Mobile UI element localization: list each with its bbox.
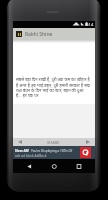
button[interactable]: Previous	[13, 138, 27, 146]
staticText: सबसे बड़ा दिन राखी है, दूरी क्या कम का त…	[16, 77, 91, 98]
staticText: Rakhi Shine	[25, 31, 53, 38]
staticText: SHARE	[47, 140, 60, 145]
staticText: New AR!	[15, 148, 30, 153]
button[interactable]: New AR!	[13, 146, 95, 159]
staticText: ads ad block AdBlock	[15, 154, 47, 158]
button[interactable]: Back	[13, 159, 41, 173]
button[interactable]: Next	[81, 138, 95, 146]
staticText: You're Displaying a 100's Of	[31, 149, 73, 153]
button[interactable]: Recent apps	[68, 159, 95, 173]
button[interactable]: Home	[41, 159, 68, 173]
staticText: 8:14	[85, 22, 94, 28]
